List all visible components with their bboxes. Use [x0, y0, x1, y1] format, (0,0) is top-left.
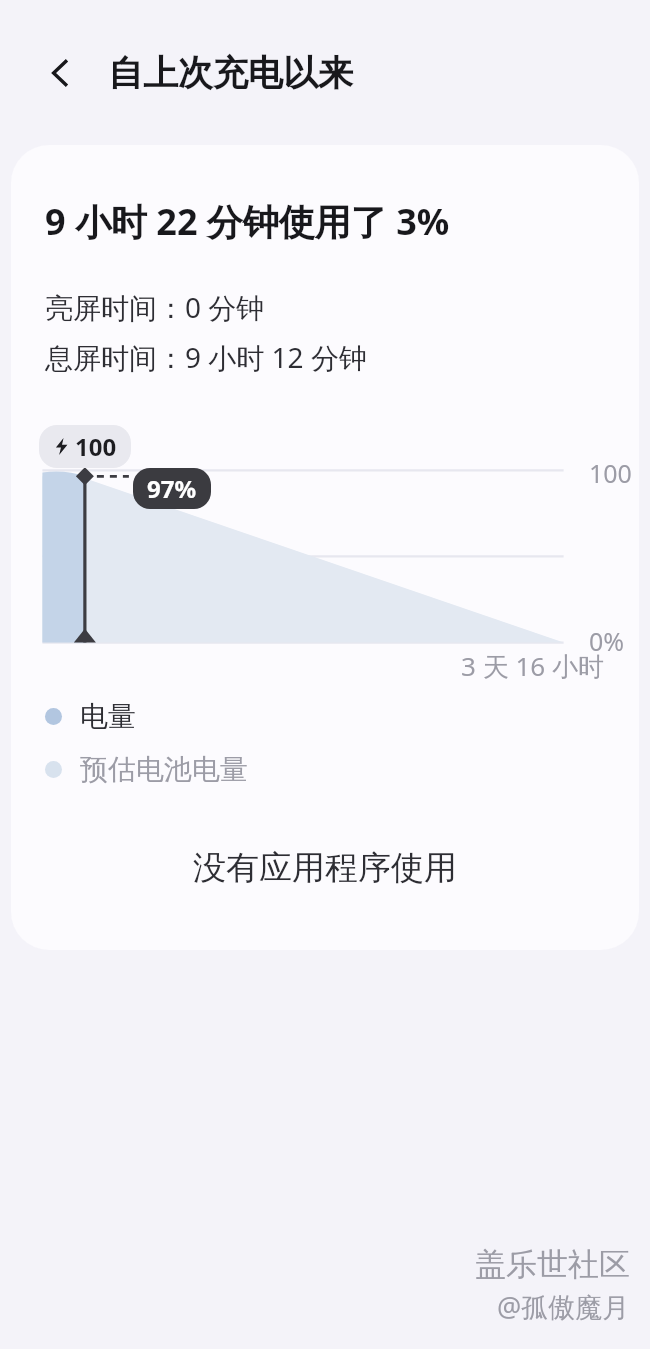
staticText: 息屏时间：9 小时 12 分钟 — [45, 338, 367, 376]
button[interactable]: 电量 — [45, 699, 639, 734]
button[interactable]: 预估电池电量 — [45, 752, 639, 787]
staticText: 自上次充电以来 — [108, 51, 353, 95]
staticText: 3 天 16 小时 — [461, 648, 604, 681]
staticText: 100 — [75, 430, 117, 463]
staticText: 预估电池电量 — [80, 752, 248, 787]
staticText: 电量 — [80, 699, 136, 734]
staticText: 9 小时 22 分钟使用了 3% — [45, 197, 450, 246]
button[interactable]: Back — [24, 37, 96, 109]
staticText: 盖乐世社区 — [475, 1245, 630, 1284]
staticText: 100 — [589, 456, 632, 490]
staticText: 没有应用程序使用 — [193, 847, 457, 889]
staticText: 97% — [147, 472, 197, 505]
staticText: 0% — [589, 624, 625, 658]
staticText: 亮屏时间：0 分钟 — [45, 288, 265, 326]
staticText: @孤傲魔月 — [497, 1288, 630, 1325]
